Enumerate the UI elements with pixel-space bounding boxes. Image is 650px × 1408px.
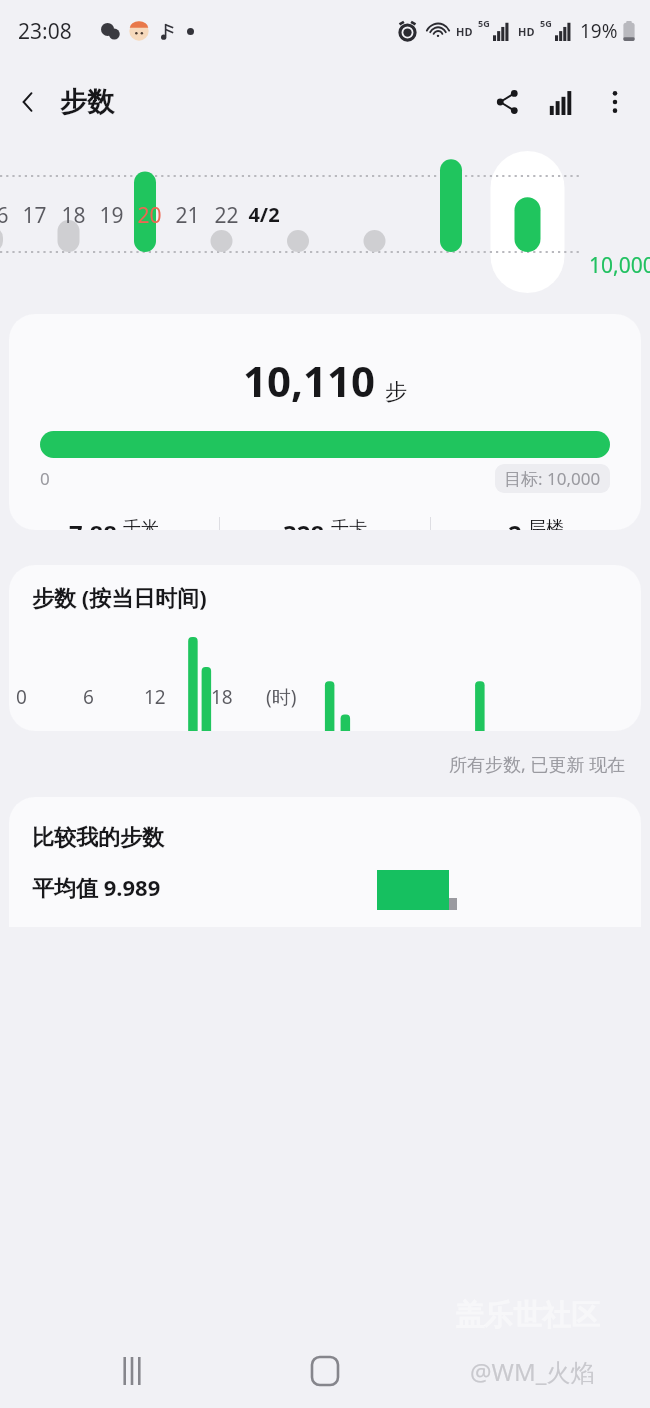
button[interactable]: 19 bbox=[92, 201, 130, 227]
button[interactable]: 17 bbox=[15, 201, 53, 227]
staticText: HD bbox=[456, 24, 473, 39]
staticText: 5G bbox=[540, 17, 552, 29]
button[interactable]: Back bbox=[0, 74, 56, 130]
staticText: 17 bbox=[22, 201, 47, 227]
button[interactable]: 7.88 bbox=[9, 517, 219, 530]
staticText: HD bbox=[518, 24, 535, 39]
staticText: 12 bbox=[144, 684, 166, 710]
button[interactable]: 比较我的步数 bbox=[9, 797, 641, 927]
button[interactable]: Trends bbox=[534, 75, 588, 129]
staticText: @WM_火焰 bbox=[470, 1355, 595, 1388]
staticText: 平均值 9.989 bbox=[32, 872, 161, 902]
staticText: 目标: 10,000 bbox=[504, 467, 601, 490]
staticText: 10,000 bbox=[589, 251, 650, 280]
staticText: 6 bbox=[83, 684, 94, 710]
button[interactable]: 4/23 bbox=[245, 201, 283, 227]
button[interactable]: 2 bbox=[431, 517, 641, 530]
staticText: 16 bbox=[0, 201, 9, 227]
staticText: 18 bbox=[61, 201, 86, 227]
staticText: 21 bbox=[175, 201, 200, 227]
staticText: 7.88 bbox=[69, 517, 117, 530]
button[interactable]: 328 bbox=[220, 517, 430, 530]
button[interactable]: Share bbox=[480, 75, 534, 129]
staticText: 千卡 bbox=[331, 517, 367, 530]
button[interactable]: 22 bbox=[207, 201, 245, 227]
button[interactable]: Home bbox=[293, 1339, 357, 1403]
staticText: 步数 (按当日时间) bbox=[32, 582, 207, 612]
staticText: 328 bbox=[283, 517, 325, 530]
staticText: 比较我的步数 bbox=[32, 824, 164, 852]
staticText: 0 bbox=[40, 467, 50, 490]
staticText: 步 bbox=[385, 378, 407, 406]
staticText: 千米 bbox=[123, 517, 159, 530]
staticText: 4/23 bbox=[245, 201, 283, 227]
staticText: 0 bbox=[16, 684, 27, 710]
button[interactable]: Recent apps bbox=[100, 1339, 164, 1403]
button[interactable]: 18 bbox=[54, 201, 92, 227]
staticText: 19% bbox=[580, 18, 618, 44]
button[interactable]: 20 bbox=[130, 201, 168, 227]
staticText: 层楼 bbox=[528, 517, 564, 530]
staticText: 10,110 bbox=[243, 352, 376, 409]
staticText: 18 bbox=[211, 684, 233, 710]
staticText: 23:08 bbox=[18, 17, 72, 46]
staticText: 22 bbox=[214, 201, 239, 227]
button[interactable]: 10,110 bbox=[9, 314, 641, 530]
staticText: 2 bbox=[508, 517, 522, 530]
staticText: 步数 bbox=[60, 85, 114, 119]
button[interactable]: 21 bbox=[168, 201, 206, 227]
staticText: (时) bbox=[266, 684, 297, 710]
staticText: 19 bbox=[99, 201, 124, 227]
staticText: 5G bbox=[478, 17, 490, 29]
staticText: 20 bbox=[137, 201, 162, 227]
button[interactable]: 步数 (按当日时间) bbox=[9, 565, 641, 731]
button[interactable]: More options bbox=[588, 75, 642, 129]
button[interactable]: 16 bbox=[0, 201, 15, 227]
staticText: 所有步数, 已更新 现在 bbox=[449, 752, 626, 777]
